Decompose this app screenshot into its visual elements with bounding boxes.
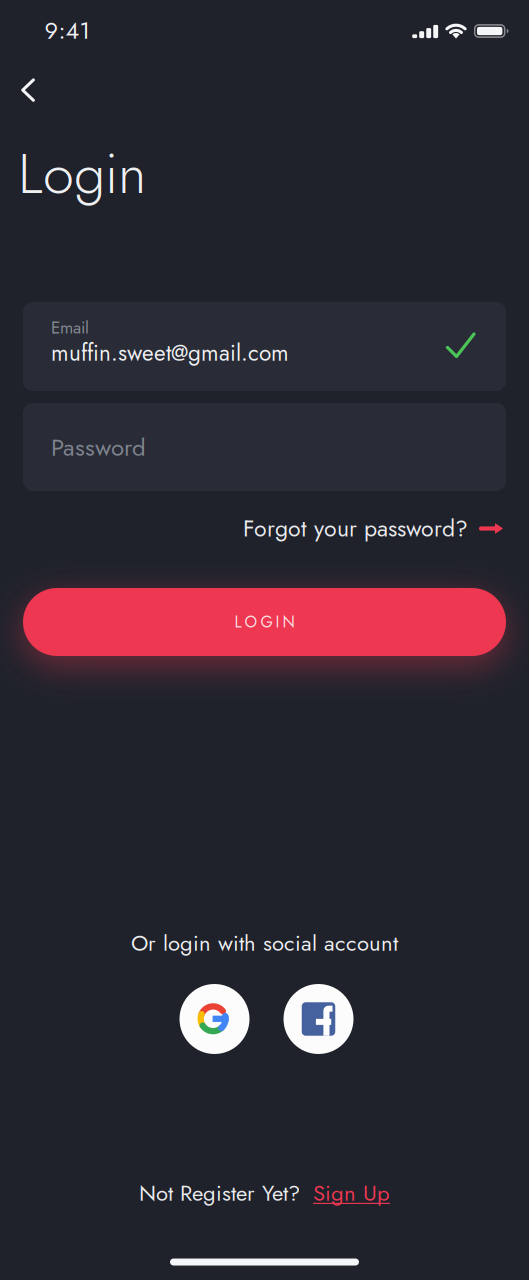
button[interactable]: Password [23, 403, 506, 491]
button[interactable]: Login with Facebook [283, 984, 353, 1054]
staticText: Sign Up [313, 1177, 390, 1209]
staticText: Password [51, 430, 146, 465]
button[interactable]: L O G I N [23, 588, 506, 656]
button[interactable]: Back [5, 68, 49, 112]
staticText: Forgot your password? [243, 512, 468, 545]
button[interactable]: Email [23, 302, 506, 391]
button[interactable]: Login with Google [179, 984, 249, 1054]
button[interactable]: Sign Up [313, 1177, 390, 1209]
staticText: Email [51, 315, 89, 340]
button[interactable]: Forgot your password? [243, 512, 529, 545]
staticText: Or login with social account [131, 927, 398, 959]
staticText: L O G I N [234, 610, 294, 633]
staticText: Not Register Yet? [139, 1177, 300, 1209]
staticText: muffin.sweet@gmail.com [51, 337, 289, 369]
staticText: Login [18, 133, 146, 214]
staticText: 9:41 [44, 13, 90, 47]
